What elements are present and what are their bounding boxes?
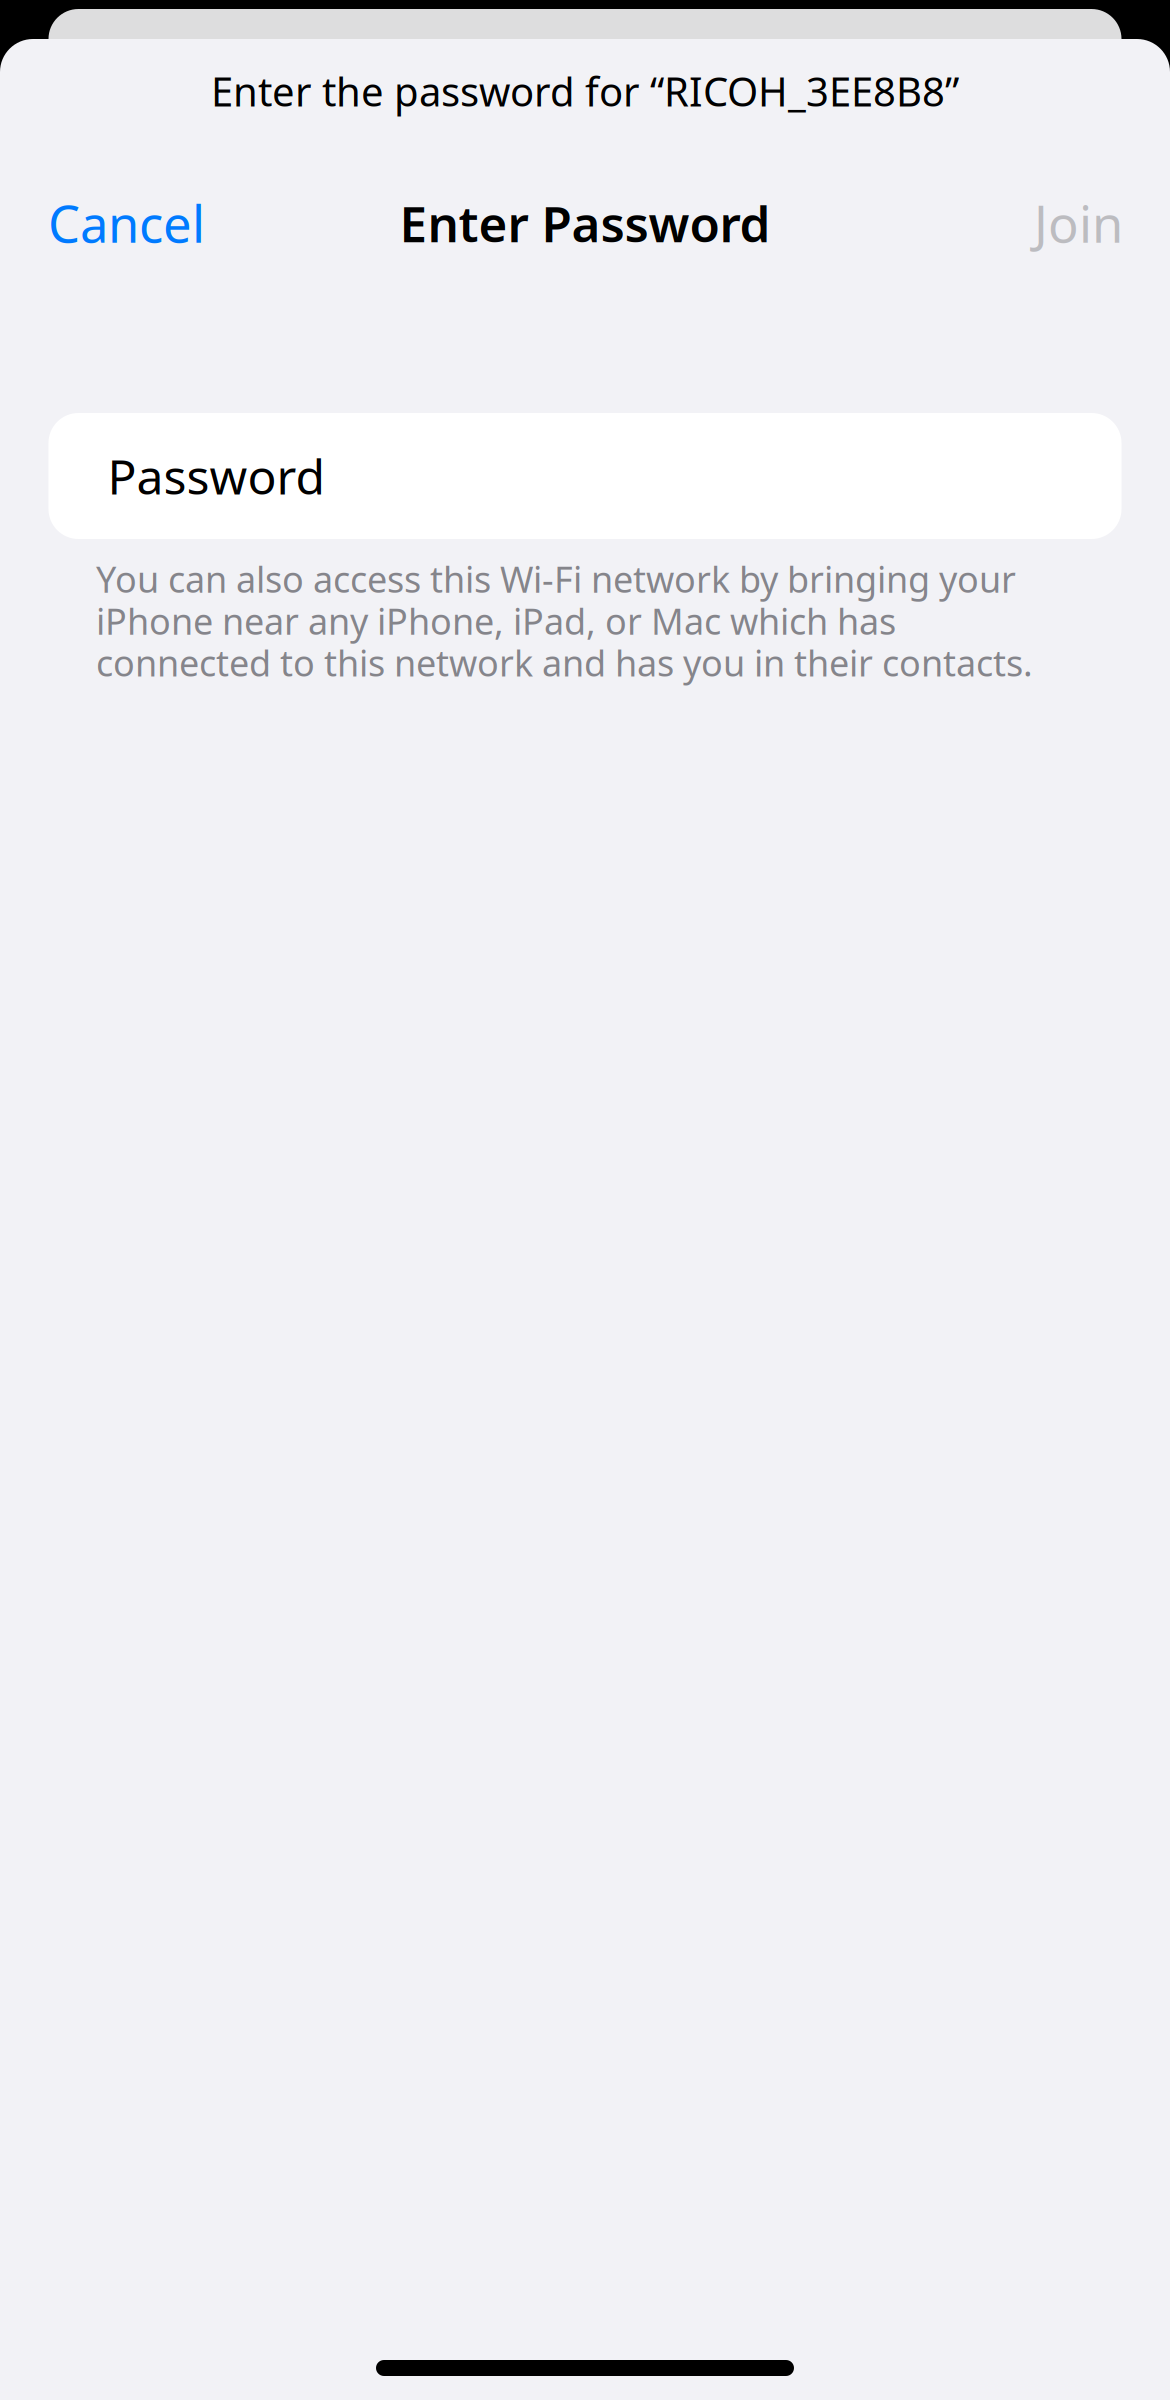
staticText: Cancel <box>48 189 205 257</box>
staticText: Join <box>1034 189 1123 257</box>
button[interactable]: Cancel <box>0 162 229 284</box>
button[interactable]: Join <box>1010 162 1170 284</box>
staticText: Enter Password <box>399 190 770 256</box>
staticText: You can also access this Wi-Fi network b… <box>96 555 1033 686</box>
staticText: Enter the password for “RICOH_3EE8B8” <box>211 64 959 117</box>
staticText: Password <box>107 444 325 508</box>
button[interactable]: Password <box>48 413 1121 539</box>
